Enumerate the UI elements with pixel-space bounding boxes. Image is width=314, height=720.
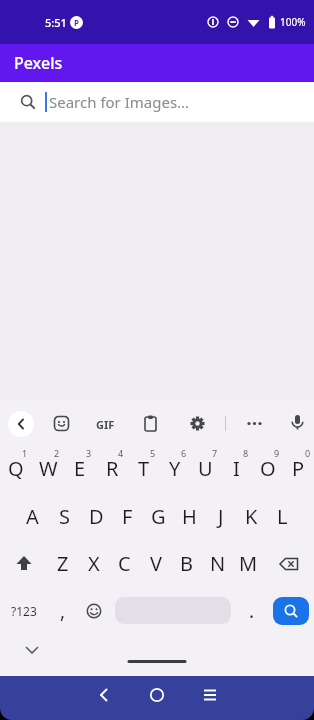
button[interactable]: N xyxy=(202,540,233,587)
staticText: 6 xyxy=(181,447,187,459)
staticText: H xyxy=(182,503,197,530)
button[interactable] xyxy=(202,687,218,703)
button[interactable]: ?123 xyxy=(0,587,47,634)
staticText: 5 xyxy=(150,447,156,459)
button[interactable]: Search for Images… xyxy=(0,82,314,122)
button[interactable]: B xyxy=(171,540,202,587)
button[interactable]: H xyxy=(174,493,205,540)
button[interactable]: 9 xyxy=(252,446,283,493)
staticText: 9 xyxy=(274,447,280,459)
button[interactable] xyxy=(149,687,165,703)
staticText: 2 xyxy=(54,447,60,459)
button[interactable]: 2 xyxy=(32,446,64,493)
staticText: 0 xyxy=(305,447,311,459)
staticText: P xyxy=(74,17,79,28)
button[interactable]: Z xyxy=(47,540,78,587)
staticText: 8 xyxy=(243,447,249,459)
staticText: R xyxy=(106,455,119,482)
button[interactable]: . xyxy=(236,587,267,634)
button[interactable]: 5 xyxy=(128,446,159,493)
staticText: 4 xyxy=(118,447,124,459)
button[interactable] xyxy=(78,587,110,634)
button[interactable]: X xyxy=(78,540,109,587)
button[interactable]: D xyxy=(80,493,112,540)
staticText: I xyxy=(233,455,240,482)
button[interactable] xyxy=(142,415,159,432)
staticText: B xyxy=(180,550,193,577)
button[interactable]: V xyxy=(140,540,171,587)
staticText: Z xyxy=(57,550,69,577)
staticText: 7 xyxy=(212,447,218,459)
staticText: S xyxy=(59,503,70,530)
staticText: 3 xyxy=(86,447,92,459)
staticText: . xyxy=(249,598,255,624)
button[interactable] xyxy=(289,414,306,431)
staticText: W xyxy=(39,455,58,482)
button[interactable]: S xyxy=(48,493,80,540)
button[interactable] xyxy=(264,540,314,587)
staticText: Pexels xyxy=(14,52,63,74)
staticText: , xyxy=(60,598,66,624)
staticText: N xyxy=(210,550,226,577)
staticText: F xyxy=(122,503,133,530)
button[interactable]: J xyxy=(205,493,236,540)
staticText: U xyxy=(198,455,213,482)
staticText: ?123 xyxy=(11,603,37,619)
button[interactable]: 1 xyxy=(0,446,32,493)
button[interactable]: F xyxy=(112,493,143,540)
staticText: C xyxy=(118,550,131,577)
staticText: X xyxy=(88,550,100,577)
staticText: Y xyxy=(169,455,181,482)
button[interactable] xyxy=(96,687,112,703)
staticText: M xyxy=(239,550,258,577)
button[interactable]: 8 xyxy=(221,446,252,493)
staticText: K xyxy=(245,503,258,530)
button[interactable] xyxy=(267,587,314,634)
button[interactable]: M xyxy=(233,540,264,587)
staticText: A xyxy=(26,503,39,530)
staticText: Q xyxy=(8,455,24,482)
staticText: T xyxy=(138,455,150,482)
staticText: Search for Images… xyxy=(49,92,189,112)
staticText: V xyxy=(150,550,162,577)
staticText: G xyxy=(151,503,166,530)
button[interactable]: 7 xyxy=(190,446,221,493)
button[interactable] xyxy=(0,540,47,587)
button[interactable]: G xyxy=(143,493,174,540)
staticText: J xyxy=(218,503,224,530)
button[interactable]: 0 xyxy=(283,446,314,493)
button[interactable]: 3 xyxy=(64,446,96,493)
button[interactable] xyxy=(110,587,236,634)
button[interactable]: , xyxy=(47,587,78,634)
staticText: 5:51 xyxy=(45,15,67,30)
staticText: P xyxy=(292,455,305,482)
button[interactable]: K xyxy=(236,493,267,540)
button[interactable] xyxy=(246,415,263,432)
button[interactable] xyxy=(24,642,40,658)
staticText: O xyxy=(260,455,276,482)
button[interactable] xyxy=(8,411,34,437)
staticText: 100% xyxy=(280,15,306,29)
button[interactable]: L xyxy=(267,493,298,540)
button[interactable]: 6 xyxy=(159,446,190,493)
button[interactable]: 4 xyxy=(96,446,128,493)
staticText: 1 xyxy=(22,447,28,459)
button[interactable] xyxy=(53,415,71,433)
staticText: GIF xyxy=(96,417,115,432)
button[interactable] xyxy=(189,415,206,432)
staticText: E xyxy=(74,455,86,482)
staticText: L xyxy=(277,503,288,530)
staticText: D xyxy=(89,503,104,530)
button[interactable]: C xyxy=(109,540,140,587)
button[interactable]: A xyxy=(16,493,48,540)
